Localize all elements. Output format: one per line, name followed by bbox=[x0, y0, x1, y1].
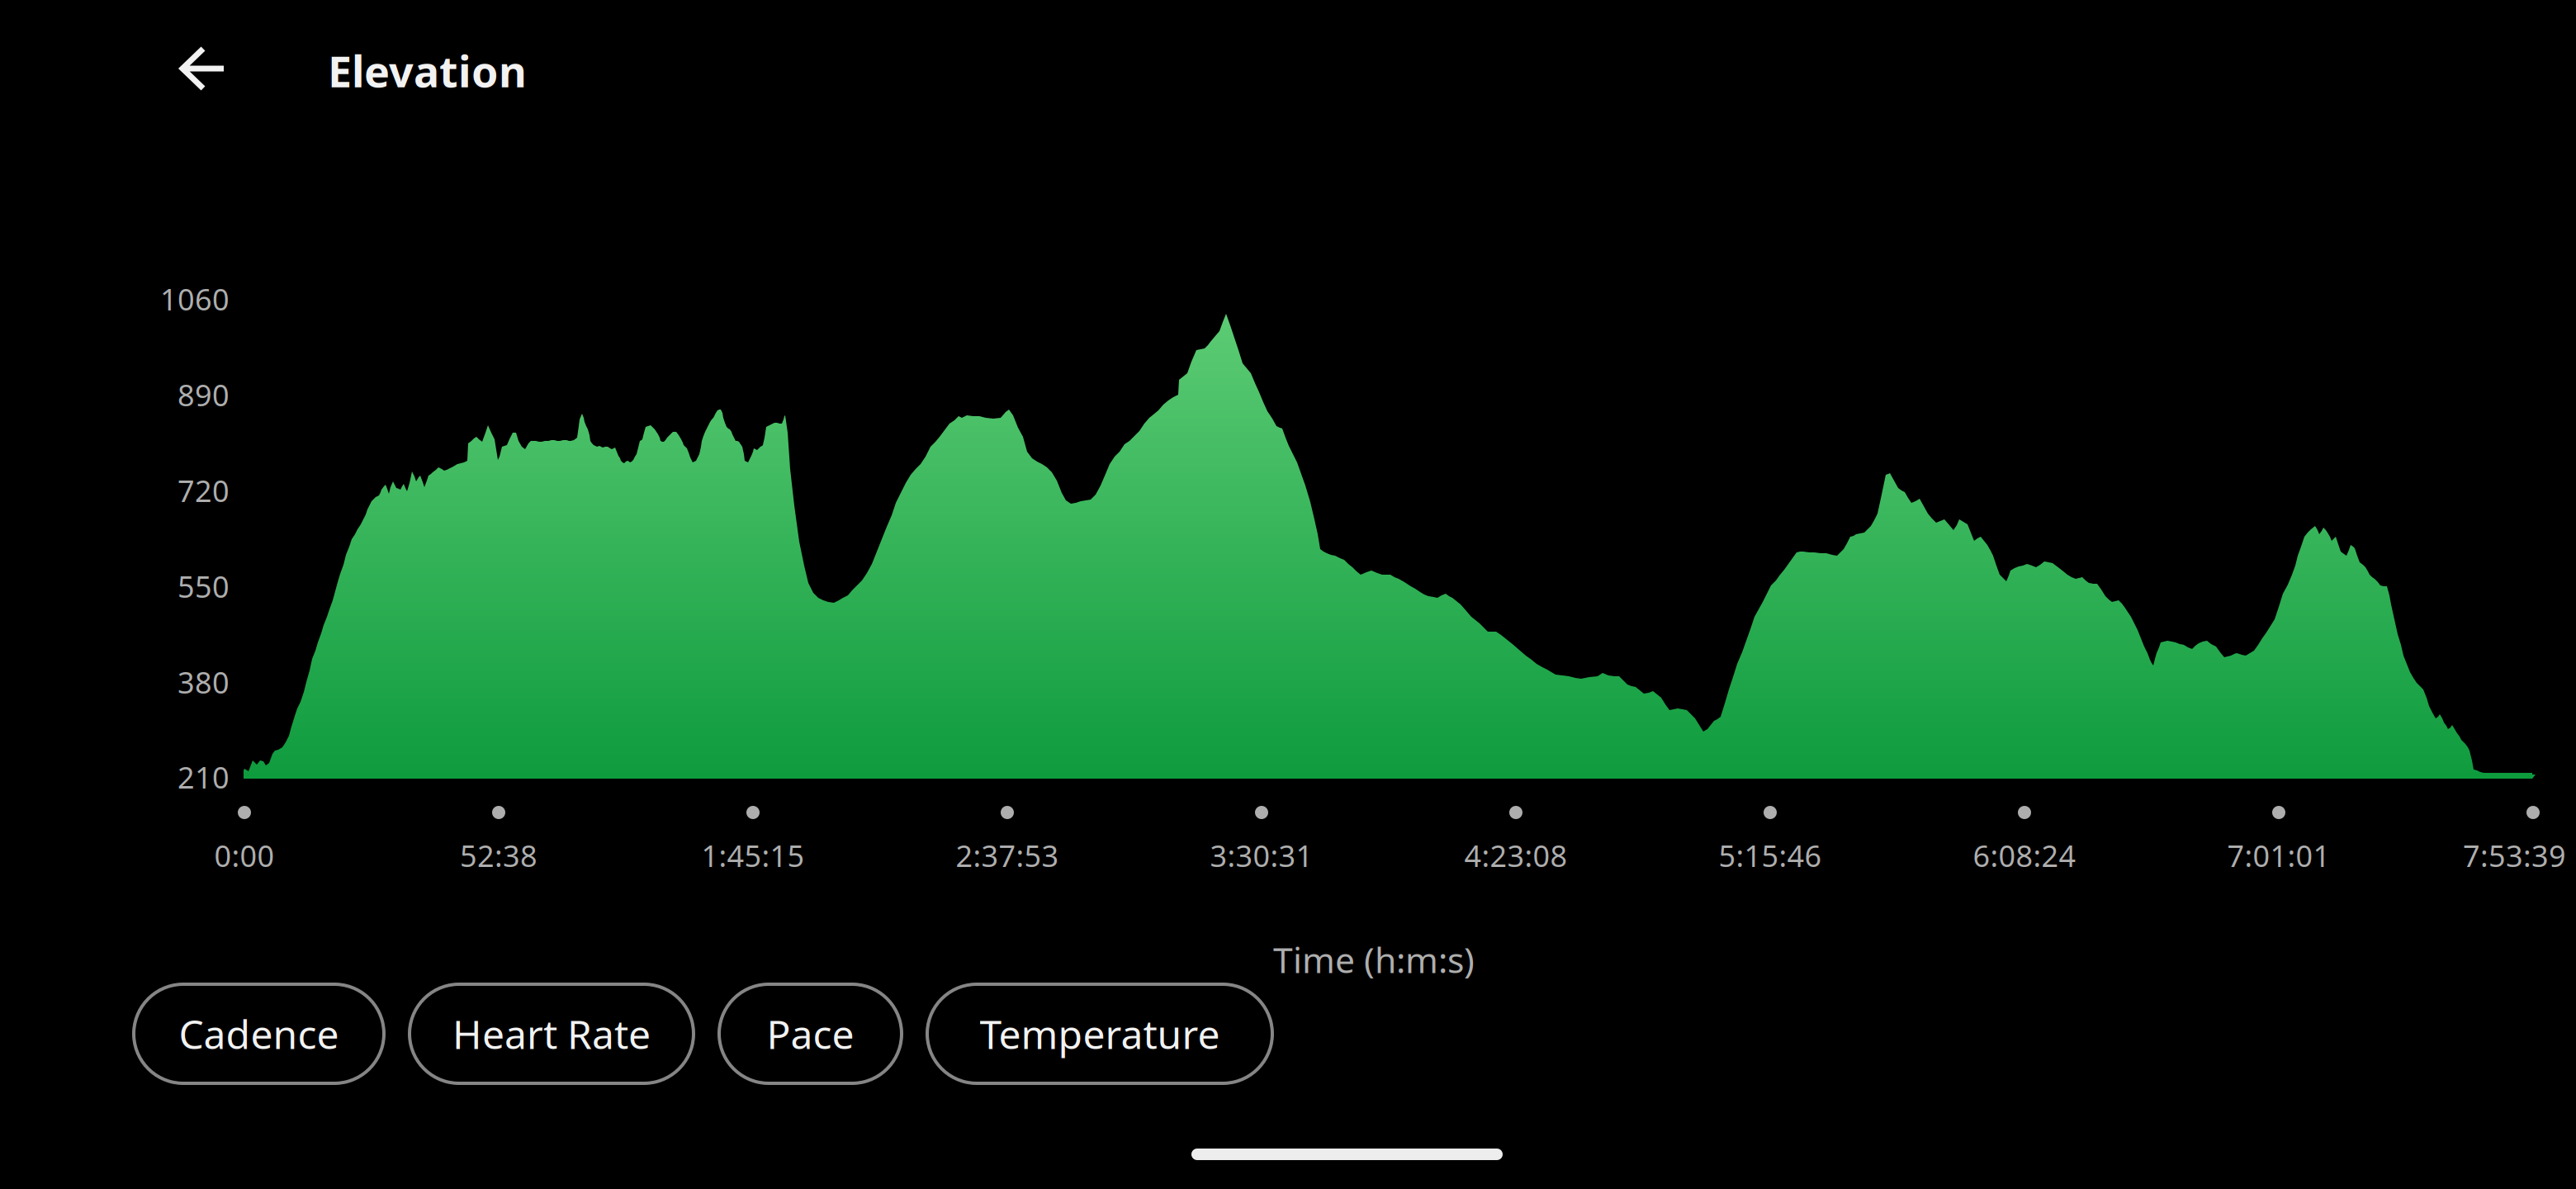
button[interactable]: Cadence bbox=[134, 984, 384, 1083]
staticText: 1:45:15 bbox=[701, 836, 805, 875]
staticText: 52:38 bbox=[460, 836, 537, 875]
button[interactable]: Back bbox=[157, 23, 249, 114]
staticText: 6:08:24 bbox=[1973, 836, 2076, 875]
button[interactable]: Pace bbox=[719, 984, 902, 1083]
button[interactable]: Temperature bbox=[927, 984, 1272, 1083]
staticText: Cadence bbox=[179, 1007, 339, 1060]
staticText: Elevation bbox=[328, 42, 527, 99]
staticText: Time (h:m:s) bbox=[1273, 936, 1475, 983]
staticText: 380 bbox=[178, 662, 230, 702]
staticText: 720 bbox=[178, 471, 230, 510]
staticText: Heart Rate bbox=[452, 1007, 651, 1060]
staticText: 0:00 bbox=[214, 836, 275, 875]
staticText: 1060 bbox=[160, 279, 230, 319]
staticText: Pace bbox=[767, 1007, 854, 1060]
staticText: 2:37:53 bbox=[956, 836, 1059, 875]
button[interactable]: Heart Rate bbox=[410, 984, 694, 1083]
staticText: Temperature bbox=[980, 1007, 1220, 1060]
staticText: 890 bbox=[178, 375, 230, 414]
staticText: 3:30:31 bbox=[1210, 836, 1313, 875]
staticText: 210 bbox=[178, 757, 230, 797]
staticText: 550 bbox=[178, 567, 230, 606]
staticText: 4:23:08 bbox=[1464, 836, 1567, 875]
staticText: 7:01:01 bbox=[2227, 836, 2330, 875]
staticText: 5:15:46 bbox=[1719, 836, 1822, 875]
staticText: 7:53:39 bbox=[2463, 836, 2566, 875]
